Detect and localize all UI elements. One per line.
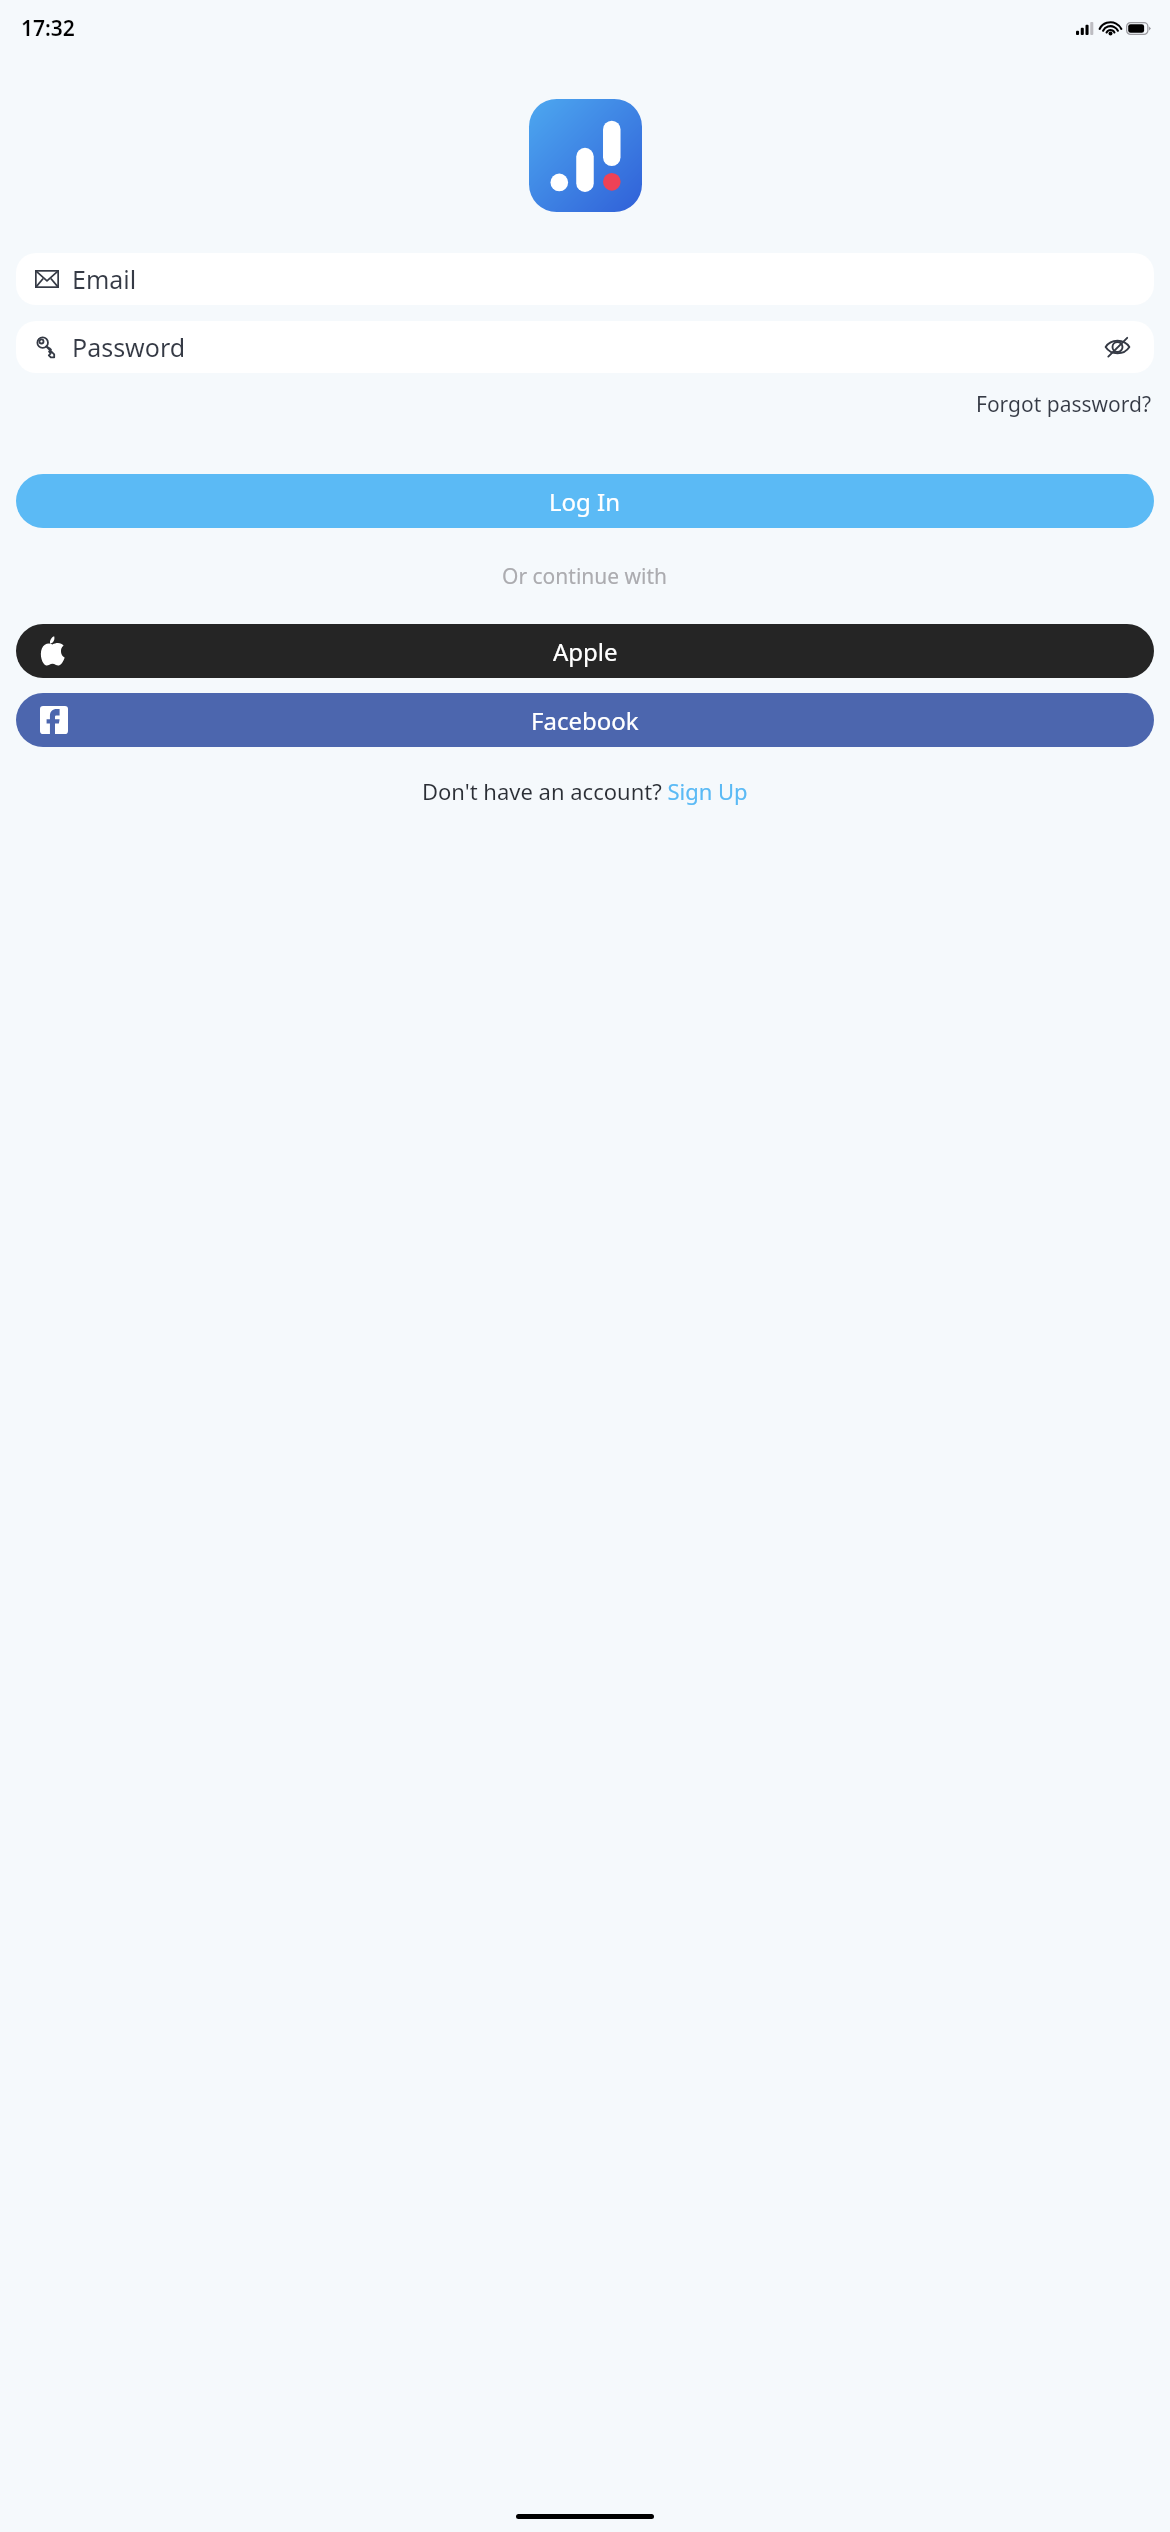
staticText: 17:32 [21,14,75,43]
button[interactable]: Show password [1100,333,1135,361]
staticText: Password [72,330,186,364]
staticText: Apple [553,635,618,668]
button[interactable]: Log In [16,474,1154,528]
button[interactable]: Email [16,253,1154,305]
staticText: Facebook [531,704,639,737]
staticText: Forgot password? [976,390,1152,419]
staticText: Or continue with [502,562,668,591]
staticText: Email [72,262,137,296]
button[interactable]: Password [16,321,1154,373]
button[interactable]: Facebook [16,693,1154,747]
staticText: Don't have an account? Sign Up [422,776,748,806]
staticText: Log In [549,485,621,518]
button[interactable]: Apple [16,624,1154,678]
button[interactable]: Don't have an account? Sign Up [418,772,752,810]
button[interactable]: Forgot password? [974,385,1154,424]
